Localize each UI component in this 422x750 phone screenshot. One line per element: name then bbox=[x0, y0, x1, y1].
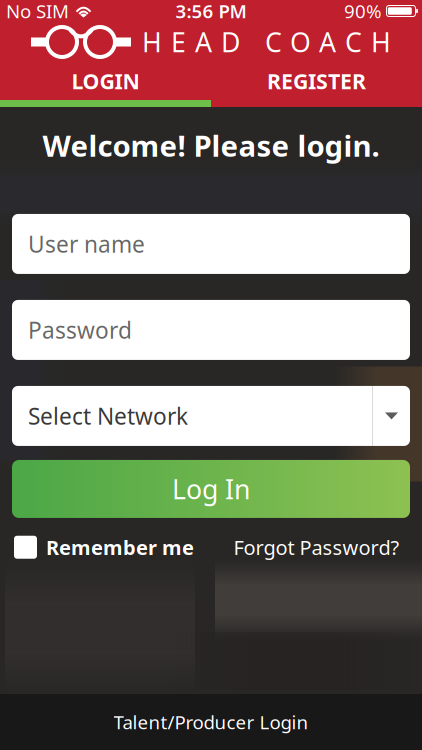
button[interactable]: Log In bbox=[12, 460, 410, 518]
button[interactable]: Select Network bbox=[12, 386, 410, 446]
staticText: No SIM bbox=[6, 0, 69, 23]
staticText: 3:56 PM bbox=[175, 0, 246, 23]
staticText: REGISTER bbox=[267, 67, 366, 95]
staticText: LOGIN bbox=[71, 67, 139, 95]
button[interactable]: User name text field bbox=[12, 214, 410, 274]
button[interactable]: REGISTER bbox=[211, 62, 422, 100]
staticText: Talent/Producer Login bbox=[113, 710, 308, 734]
staticText: User name bbox=[28, 229, 145, 259]
button[interactable]: Password text field bbox=[12, 300, 410, 360]
staticText: 90% bbox=[344, 0, 382, 23]
staticText: Log In bbox=[172, 471, 250, 507]
button[interactable]: Talent/Producer Login bbox=[0, 694, 422, 750]
staticText: HEAD COACH bbox=[142, 24, 391, 60]
staticText: Select Network bbox=[28, 401, 188, 431]
button[interactable]: LOGIN bbox=[0, 62, 211, 100]
staticText: Password bbox=[28, 315, 132, 345]
staticText: Welcome! Please login. bbox=[42, 126, 379, 165]
button[interactable]: Forgot Password? bbox=[211, 534, 422, 561]
button[interactable]: Remember me bbox=[0, 534, 194, 561]
staticText: Remember me bbox=[46, 534, 194, 561]
staticText: Forgot Password? bbox=[233, 534, 399, 561]
